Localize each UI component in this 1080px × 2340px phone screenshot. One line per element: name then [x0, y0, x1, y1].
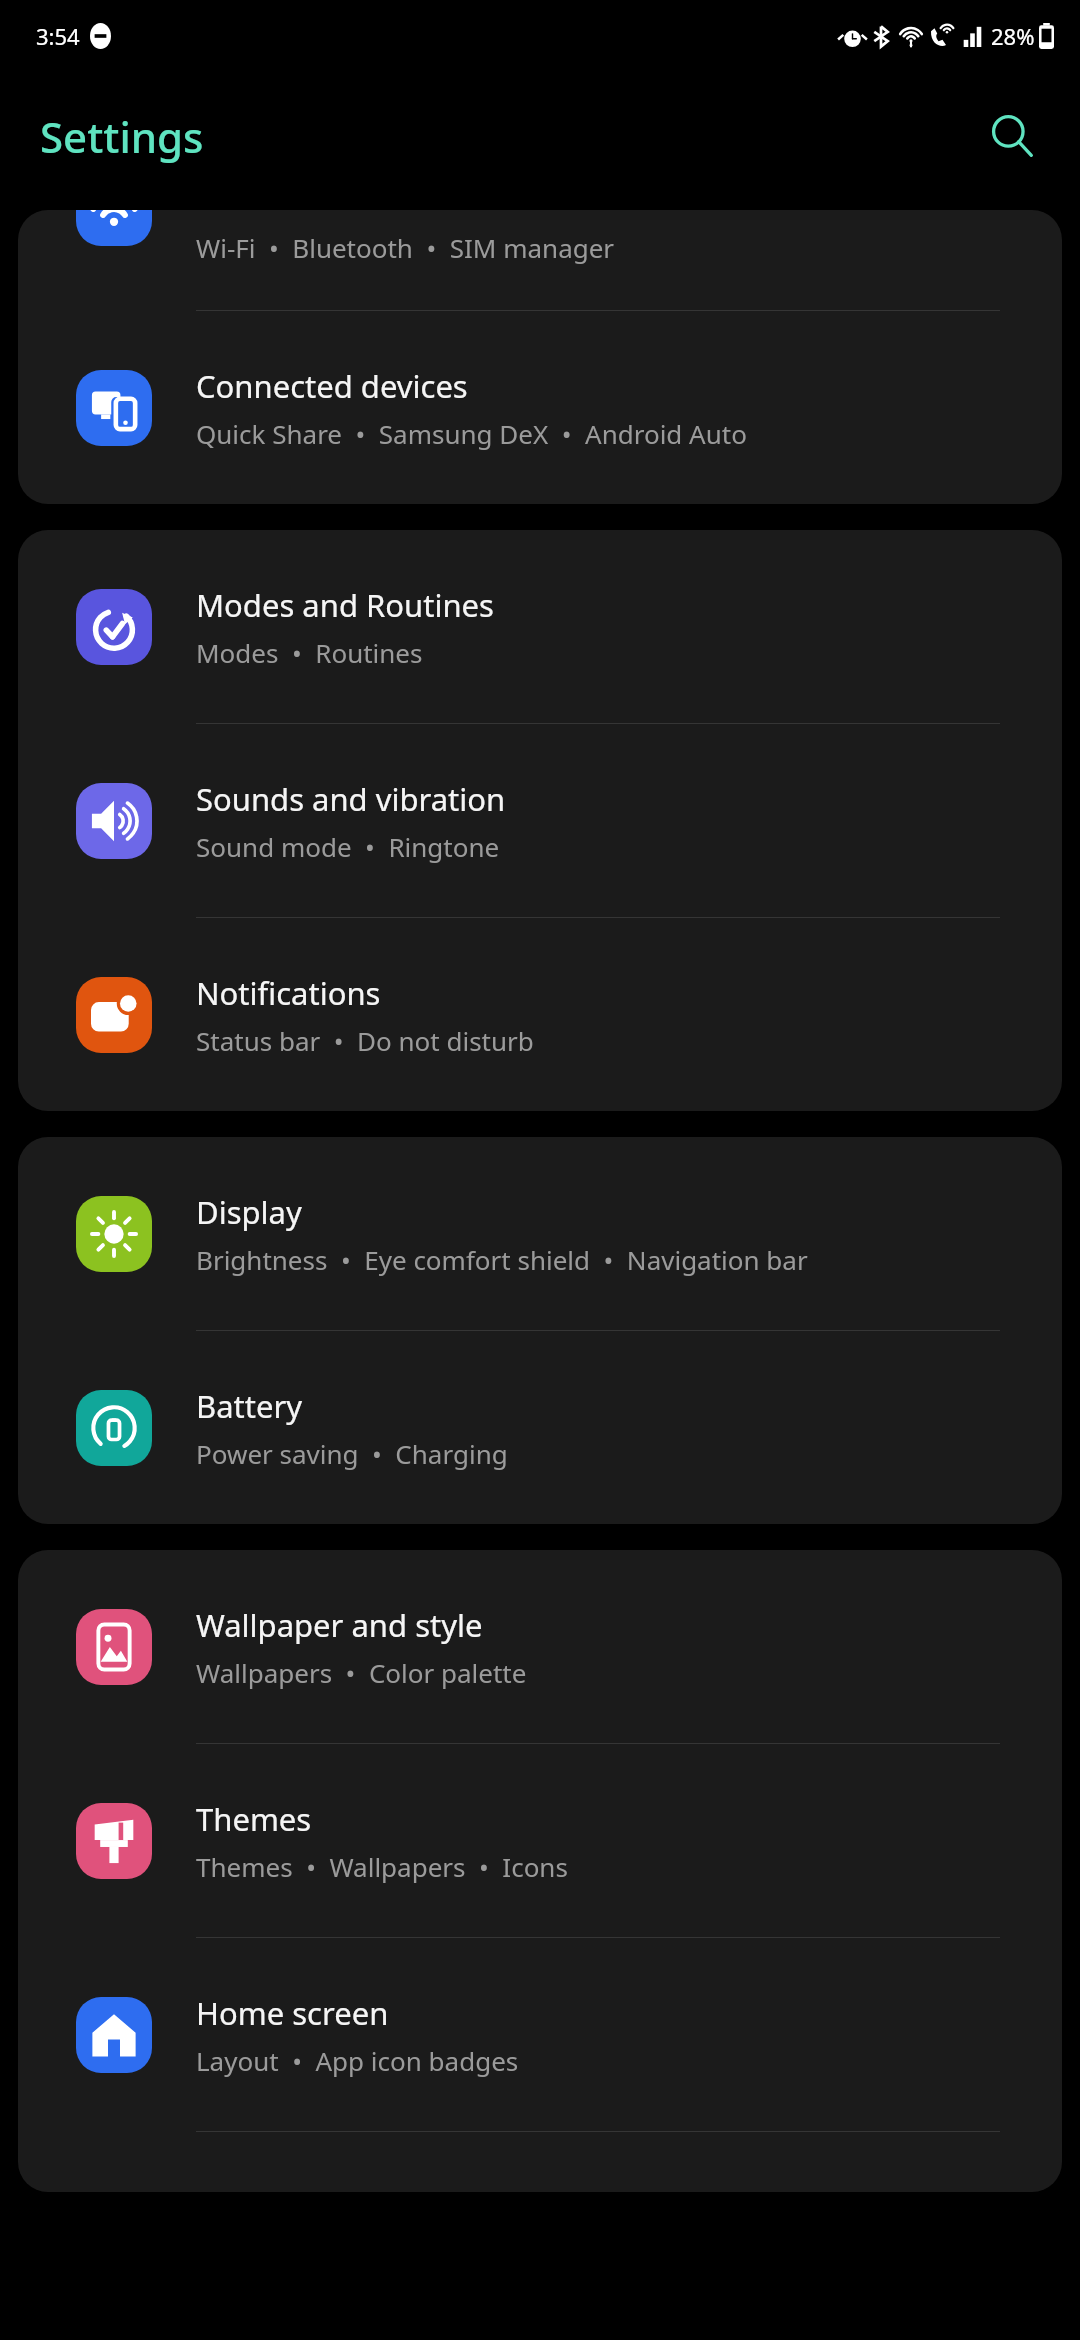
button[interactable]: Home screen	[18, 1938, 1062, 2131]
staticText: Wallpaper and style	[196, 1604, 483, 1646]
button[interactable]: Sounds and vibration	[18, 724, 1062, 917]
button[interactable]: Wi-Fi • Bluetooth • SIM manager	[18, 210, 1062, 310]
staticText: 28%	[991, 21, 1035, 51]
staticText: 3:54	[36, 21, 80, 51]
button[interactable]: Display	[18, 1137, 1062, 1330]
staticText: Power saving • Charging	[196, 1436, 508, 1471]
button[interactable]: Notifications	[18, 918, 1062, 1111]
staticText: Themes • Wallpapers • Icons	[196, 1849, 568, 1884]
staticText: Connected devices	[196, 365, 468, 407]
staticText: Display	[196, 1191, 302, 1233]
staticText: Settings	[40, 108, 204, 165]
staticText: Modes and Routines	[196, 584, 494, 626]
staticText: Status bar • Do not disturb	[196, 1023, 534, 1058]
staticText: Notifications	[196, 972, 381, 1014]
staticText: Brightness • Eye comfort shield • Naviga…	[196, 1242, 808, 1277]
staticText: Battery	[196, 1385, 303, 1427]
button[interactable]: Wallpaper and style	[18, 1550, 1062, 1743]
staticText: Sound mode • Ringtone	[196, 829, 500, 864]
button[interactable]: Connected devices	[18, 311, 1062, 504]
staticText: Sounds and vibration	[196, 778, 506, 820]
staticText: Wallpapers • Color palette	[196, 1655, 527, 1690]
button[interactable]: Settings	[40, 108, 204, 165]
button[interactable]: Search	[974, 98, 1050, 174]
staticText: Modes • Routines	[196, 635, 423, 670]
staticText: Layout • App icon badges	[196, 2043, 519, 2078]
staticText: Wi-Fi • Bluetooth • SIM manager	[196, 230, 615, 265]
staticText: Themes	[196, 1798, 312, 1840]
button[interactable]: Battery	[18, 1331, 1062, 1524]
staticText: Quick Share • Samsung DeX • Android Auto	[196, 416, 747, 451]
staticText: Home screen	[196, 1992, 389, 2034]
button[interactable]: Themes	[18, 1744, 1062, 1937]
button[interactable]: Modes and Routines	[18, 530, 1062, 723]
